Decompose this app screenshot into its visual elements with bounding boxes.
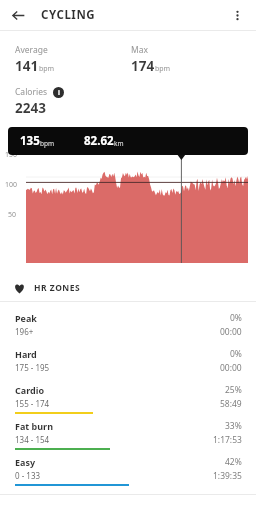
button[interactable]: Peak bbox=[0, 310, 256, 344]
staticText: 50 bbox=[8, 210, 17, 220]
staticText: 1:17:53 bbox=[213, 434, 242, 446]
button[interactable]: Cardio bbox=[0, 382, 256, 416]
staticText: 25% bbox=[225, 384, 242, 396]
staticText: 82.62 bbox=[84, 133, 114, 149]
staticText: 0 - 133 bbox=[15, 470, 41, 481]
staticText: 0% bbox=[230, 348, 242, 360]
staticText: 1:39:35 bbox=[213, 470, 242, 482]
button[interactable]: Fat burn bbox=[0, 418, 256, 452]
button[interactable]: HR ZONES bbox=[0, 275, 256, 301]
button[interactable]: Hard bbox=[0, 346, 256, 380]
staticText: 58:49 bbox=[220, 398, 242, 410]
button[interactable]: 135 bbox=[8, 127, 248, 155]
staticText: bpm bbox=[155, 64, 171, 74]
staticText: Cardio bbox=[15, 384, 45, 396]
staticText: bpm bbox=[40, 139, 55, 148]
button[interactable]: Back bbox=[4, 1, 32, 29]
staticText: 135 bbox=[20, 133, 40, 149]
staticText: Easy bbox=[15, 456, 36, 468]
staticText: Peak bbox=[15, 312, 37, 324]
staticText: HR ZONES bbox=[34, 282, 81, 294]
staticText: Average bbox=[15, 44, 48, 56]
staticText: km bbox=[114, 139, 124, 148]
staticText: 00:00 bbox=[220, 362, 242, 374]
staticText: i bbox=[58, 88, 60, 97]
staticText: Fat burn bbox=[15, 420, 53, 432]
staticText: CYCLING bbox=[41, 7, 96, 23]
button[interactable]: Easy bbox=[0, 454, 256, 488]
staticText: 141 bbox=[15, 57, 39, 75]
staticText: bpm bbox=[39, 64, 55, 74]
button[interactable]: More options bbox=[224, 2, 250, 28]
staticText: 155 - 174 bbox=[15, 398, 50, 409]
staticText: Max bbox=[131, 44, 148, 56]
staticText: Calories bbox=[15, 86, 48, 98]
staticText: 175 - 195 bbox=[15, 362, 50, 373]
staticText: 174 bbox=[131, 57, 155, 75]
staticText: 33% bbox=[225, 420, 242, 432]
staticText: 0% bbox=[230, 312, 242, 324]
staticText: Hard bbox=[15, 348, 37, 360]
button[interactable]: Calories info bbox=[53, 87, 64, 98]
staticText: 196+ bbox=[15, 326, 34, 337]
staticText: 00:00 bbox=[220, 326, 242, 338]
staticText: 150 bbox=[5, 150, 18, 160]
staticText: 100 bbox=[5, 180, 18, 190]
staticText: 134 - 154 bbox=[15, 434, 50, 445]
staticText: 2243 bbox=[15, 99, 46, 117]
staticText: 42% bbox=[225, 456, 242, 468]
